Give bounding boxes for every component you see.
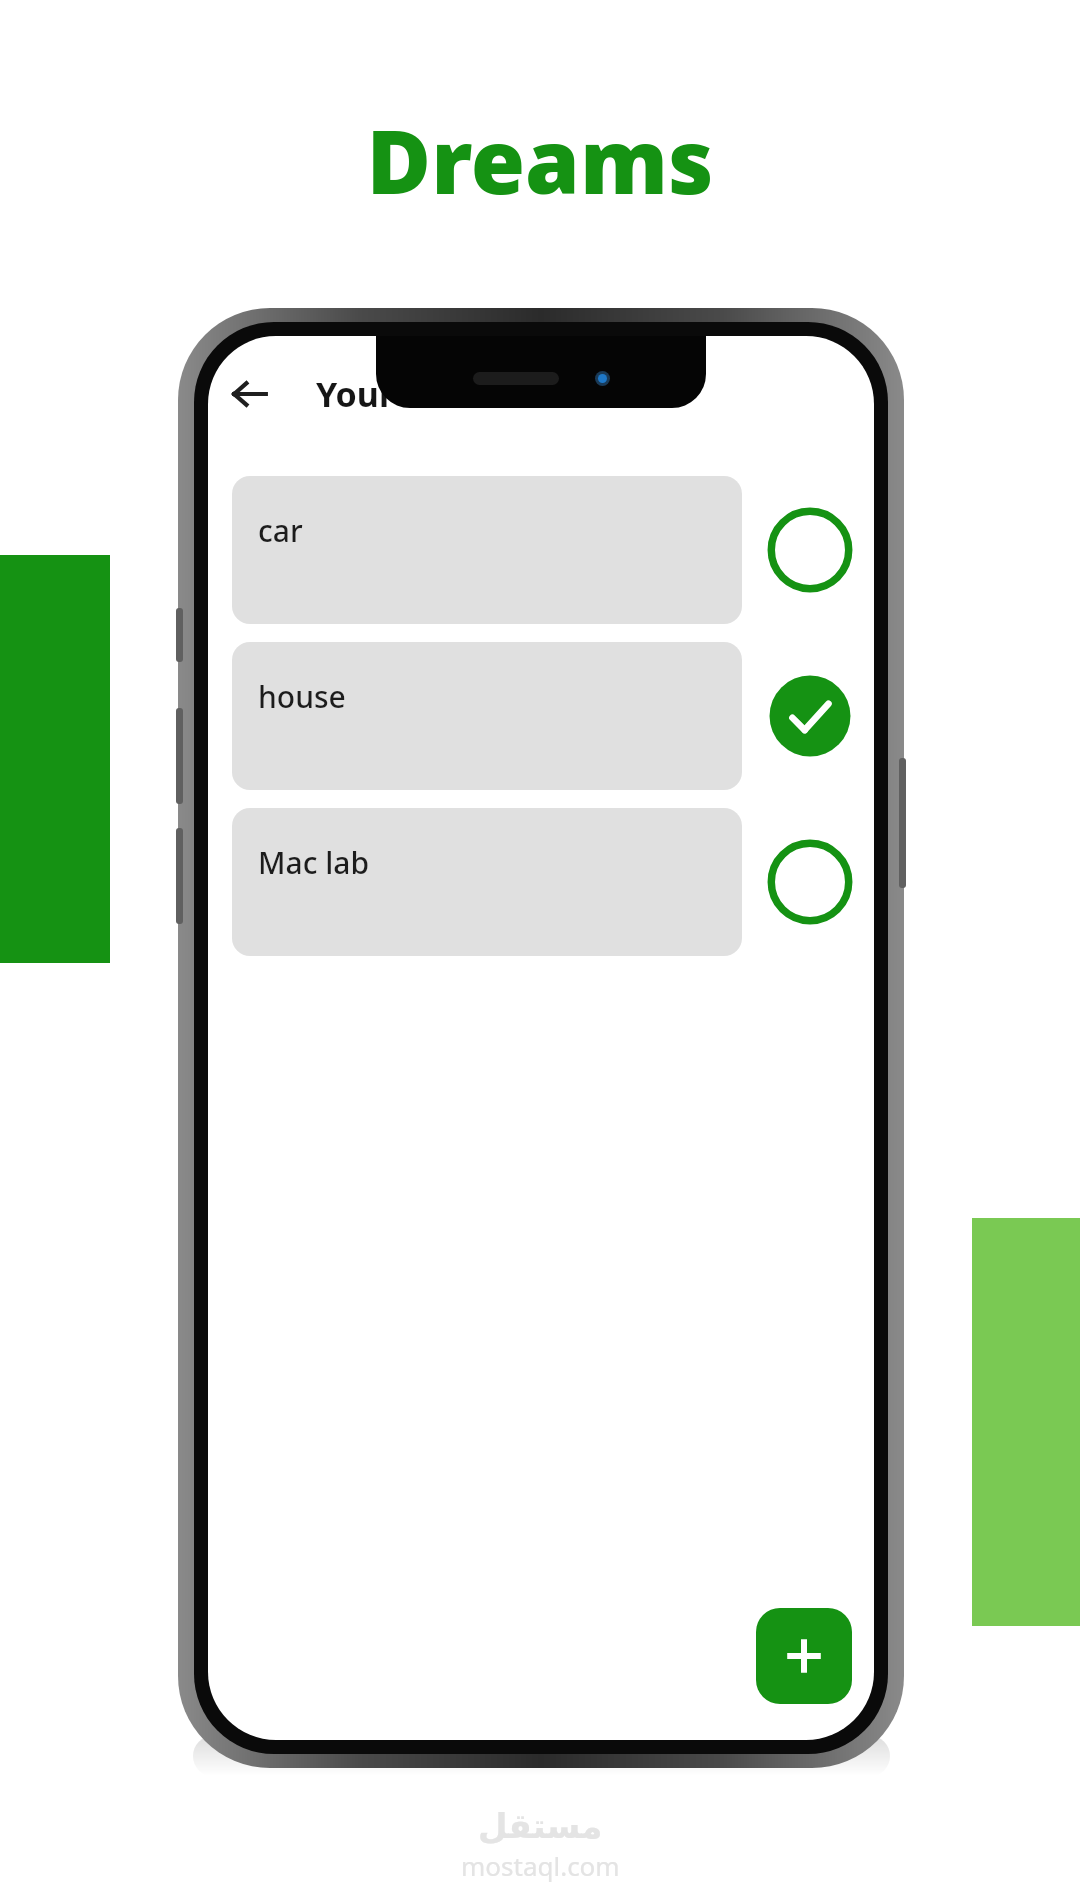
staticText: house — [258, 676, 346, 717]
staticText: مستقل — [478, 1806, 603, 1846]
staticText: Dreams — [0, 100, 1080, 220]
staticText: mostaql.com — [461, 1848, 620, 1883]
button[interactable]: car — [232, 476, 742, 624]
button[interactable]: Mac lab — [232, 808, 742, 956]
button[interactable]: Mac lab not done — [764, 836, 856, 928]
button[interactable]: car not done — [764, 504, 856, 596]
staticText: car — [258, 510, 303, 551]
button[interactable]: Add dream — [756, 1608, 852, 1704]
button[interactable]: Back — [218, 362, 282, 426]
button[interactable]: house — [232, 642, 742, 790]
staticText: Mac lab — [258, 842, 370, 883]
button[interactable]: house done — [764, 670, 856, 762]
staticText: Your Dreams — [316, 371, 534, 417]
